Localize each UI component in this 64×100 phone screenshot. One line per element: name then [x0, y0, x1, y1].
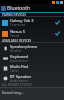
button[interactable]: Speakerphone [0, 43, 64, 53]
button[interactable]: Navigate up [0, 4, 7, 12]
staticText: Galaxy Tab 3 [10, 18, 34, 23]
staticText: Headset [10, 49, 22, 53]
button[interactable]: Multi-Pad [0, 63, 64, 73]
staticText: Speakerphone [10, 44, 38, 49]
staticText: AVAILABLE DEVICES [2, 39, 32, 42]
button[interactable]: Galaxy Tab 3 [0, 17, 64, 28]
staticText: ALL NEARBY DEVICES [2, 83, 32, 87]
staticText: Paired [10, 34, 19, 38]
staticText: Input device [10, 59, 28, 63]
staticText: Bluetooth [7, 5, 31, 12]
button[interactable]: Keyboard [0, 53, 64, 63]
staticText: Keyboard [10, 54, 28, 59]
staticText: Multi-Pad [10, 64, 29, 69]
staticText: PAIRED DEVICES [2, 13, 26, 16]
staticText: Nexus 5 [10, 29, 26, 34]
staticText: Audio device [10, 79, 28, 83]
staticText: BT Speaker [10, 74, 32, 79]
button[interactable]: Nexus 5 [0, 28, 64, 39]
staticText: Tablet [10, 69, 19, 73]
staticText: Connected [10, 23, 26, 27]
staticText: Searching… [2, 90, 24, 95]
button[interactable]: BT Speaker [0, 73, 64, 83]
